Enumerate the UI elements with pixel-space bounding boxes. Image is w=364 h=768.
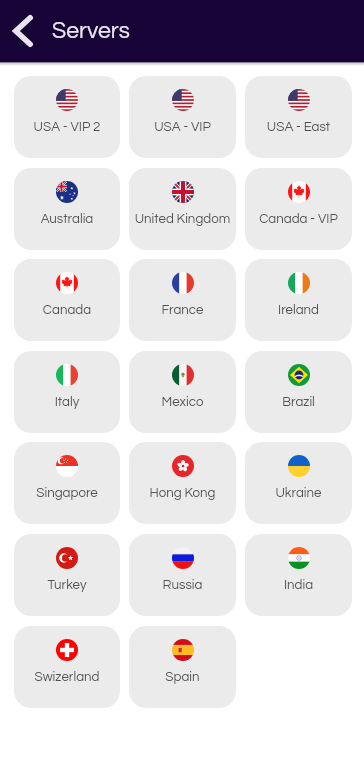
- button[interactable]: Russia: [129, 534, 236, 616]
- staticText: Ireland: [245, 303, 352, 317]
- button[interactable]: Singapore: [14, 442, 120, 524]
- button[interactable]: USA - VIP: [129, 76, 236, 158]
- staticText: Singapore: [14, 486, 120, 500]
- staticText: France: [129, 303, 236, 317]
- staticText: Swizerland: [14, 670, 120, 684]
- button[interactable]: United Kingdom: [129, 168, 236, 250]
- button[interactable]: Swizerland: [14, 626, 120, 708]
- button[interactable]: Australia: [14, 168, 120, 250]
- button[interactable]: Canada - VIP: [245, 168, 352, 250]
- staticText: Italy: [14, 395, 120, 409]
- staticText: India: [245, 578, 352, 592]
- staticText: Australia: [14, 212, 120, 226]
- button[interactable]: Spain: [129, 626, 236, 708]
- button[interactable]: Mexico: [129, 351, 236, 433]
- staticText: Canada - VIP: [245, 212, 352, 226]
- staticText: Spain: [129, 670, 236, 684]
- button[interactable]: USA - VIP 2: [14, 76, 120, 158]
- staticText: Hong Kong: [129, 486, 236, 500]
- button[interactable]: Canada: [14, 259, 120, 341]
- staticText: Turkey: [14, 578, 120, 592]
- button[interactable]: Ireland: [245, 259, 352, 341]
- staticText: Canada: [14, 303, 120, 317]
- staticText: United Kingdom: [129, 212, 236, 226]
- staticText: USA - VIP: [129, 120, 236, 134]
- staticText: Ukraine: [245, 486, 352, 500]
- staticText: Servers: [52, 19, 130, 43]
- button[interactable]: Back: [6, 0, 40, 62]
- staticText: Russia: [129, 578, 236, 592]
- button[interactable]: Turkey: [14, 534, 120, 616]
- staticText: Mexico: [129, 395, 236, 409]
- staticText: USA - East: [245, 120, 352, 134]
- staticText: USA - VIP 2: [14, 120, 120, 134]
- button[interactable]: Ukraine: [245, 442, 352, 524]
- button[interactable]: India: [245, 534, 352, 616]
- staticText: Brazil: [245, 395, 352, 409]
- button[interactable]: France: [129, 259, 236, 341]
- button[interactable]: Hong Kong: [129, 442, 236, 524]
- button[interactable]: Brazil: [245, 351, 352, 433]
- button[interactable]: USA - East: [245, 76, 352, 158]
- button[interactable]: Italy: [14, 351, 120, 433]
